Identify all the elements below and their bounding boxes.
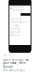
button[interactable]: Primary action — [21, 13, 31, 16]
button[interactable]: Privacy — [11, 24, 30, 27]
button[interactable]: General — [11, 17, 30, 20]
staticText: Privacy — [11, 24, 19, 27]
button[interactable]: Display — [11, 27, 30, 30]
staticText: Display — [11, 27, 20, 30]
staticText: General — [11, 17, 22, 20]
staticText: Account settings — [13, 5, 24, 12]
button[interactable]: About — [11, 34, 30, 37]
staticText: About — [11, 33, 20, 37]
staticText: Open Settings, tap your name, then choos… — [3, 58, 29, 68]
button[interactable]: Notifications — [11, 20, 30, 24]
staticText: STEP 2 — [3, 53, 11, 57]
staticText: Notifications — [11, 20, 28, 24]
staticText: the account you want to sync. — [3, 68, 25, 72]
button[interactable]: Sounds — [11, 30, 30, 34]
staticText: Sounds — [11, 30, 21, 34]
